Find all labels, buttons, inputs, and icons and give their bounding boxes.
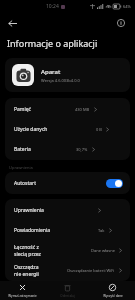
staticText: Odinstaluj — [60, 294, 75, 298]
staticText: Informacje o aplikacji — [7, 37, 98, 49]
button[interactable]: Powiadomienia — [5, 220, 130, 240]
staticText: 64% — [123, 4, 131, 9]
staticText: Autostart — [14, 180, 106, 187]
button[interactable]: Bateria — [5, 139, 130, 159]
staticText: Bateria — [14, 146, 31, 153]
staticText: Powiadomienia — [14, 227, 51, 234]
staticText: Wyczyść dane — [103, 294, 123, 298]
button[interactable]: Wstecz — [3, 14, 21, 32]
staticText: Wersja 4.6.003b4.0.0 — [41, 78, 80, 83]
staticText: Aparat — [41, 68, 61, 76]
staticText: Pamięć — [14, 106, 32, 113]
staticText: 30,7% — [76, 147, 88, 152]
staticText: 0 B — [96, 127, 102, 132]
staticText: Oszczędzanie baterii WiFi — [67, 268, 115, 273]
button[interactable]: Pamięć — [5, 99, 130, 119]
staticText: Dane własne — [91, 248, 115, 253]
button[interactable]: Informacje — [112, 14, 130, 32]
staticText: Łączność z siecią przez — [14, 244, 52, 257]
button[interactable]: Oszczędzanie energii — [5, 260, 130, 280]
button[interactable]: Użycie danych — [5, 119, 130, 139]
button[interactable]: Autostart — [5, 172, 130, 194]
staticText: Wymuś zatrzymanie — [8, 294, 37, 298]
button[interactable]: Odinstaluj — [45, 281, 90, 300]
staticText: 10:24 — [46, 3, 59, 10]
button[interactable]: Łączność z siecią przez — [5, 240, 130, 260]
button[interactable]: Wyczyść dane — [90, 281, 135, 300]
staticText: Uprawnienia — [9, 165, 33, 170]
staticText: Uprawnienia — [14, 207, 44, 214]
button[interactable]: Wymuś zatrzymanie — [0, 281, 45, 300]
staticText: 430 MB — [75, 107, 90, 112]
staticText: Tak — [98, 228, 105, 233]
button[interactable]: Aparat — [5, 58, 130, 92]
button[interactable]: Uprawnienia — [5, 200, 130, 220]
staticText: Oszczędzanie energii — [14, 264, 40, 277]
staticText: Użycie danych — [14, 126, 48, 133]
